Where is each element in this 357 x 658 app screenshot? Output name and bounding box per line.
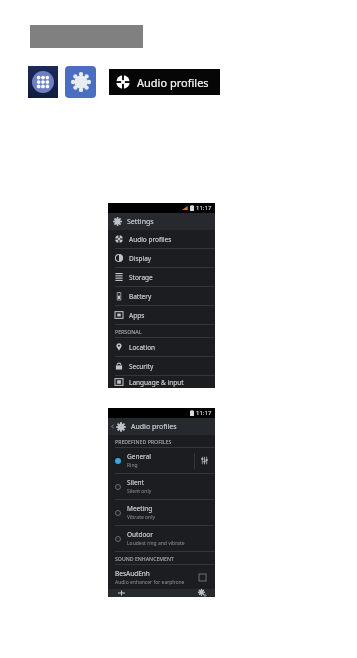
staticText: PREDEFINED PROFILES [115, 438, 172, 445]
staticText: Security [129, 362, 154, 371]
staticText: Audio profiles [129, 235, 172, 244]
staticText: Loudest ring and vibrate [127, 540, 185, 547]
button[interactable]: Language & input [108, 376, 215, 388]
staticText: 11:17 [196, 204, 212, 212]
button[interactable]: Settings [65, 66, 96, 98]
button[interactable]: Apps [28, 66, 58, 98]
staticText: General [127, 452, 151, 461]
button[interactable]: Profile settings [200, 456, 209, 465]
staticText: Apps [129, 311, 145, 320]
staticText: Settings [127, 217, 154, 227]
staticText: Location [129, 343, 156, 352]
button[interactable]: Audio profiles [108, 230, 215, 249]
staticText: Language & input [129, 378, 184, 387]
staticText: Audio profiles [131, 422, 177, 432]
button[interactable]: Audio profiles [116, 69, 209, 95]
staticText: Vibrate only [127, 514, 156, 521]
button[interactable]: Location [108, 338, 215, 357]
staticText: Ring [127, 462, 138, 469]
staticText: BesAudEnh [115, 569, 150, 578]
staticText: 11:17 [196, 409, 212, 417]
staticText: Battery [129, 292, 152, 301]
other: Back [110, 424, 115, 429]
button[interactable]: Battery [108, 287, 215, 306]
staticText: Audio profiles [137, 75, 209, 90]
button[interactable]: Settings [113, 213, 215, 230]
staticText: Outdoor [127, 530, 153, 539]
staticText: SOUND ENHANCEMENT [115, 555, 174, 562]
button[interactable]: Back [110, 418, 215, 435]
staticText: Meeting [127, 504, 153, 513]
staticText: Audio enhancer for earphone [115, 579, 185, 586]
button[interactable]: Outdoor [108, 526, 215, 552]
staticText: Silent [127, 478, 144, 487]
button[interactable]: Silent [108, 474, 215, 500]
button[interactable]: Display [108, 249, 215, 268]
staticText: Display [129, 254, 152, 263]
staticText: Storage [129, 273, 153, 282]
button[interactable]: Apps [108, 306, 215, 325]
button[interactable]: Meeting [108, 500, 215, 526]
button[interactable]: Security [108, 357, 215, 376]
button[interactable]: Storage [108, 268, 215, 287]
button[interactable]: More settings [197, 589, 207, 597]
button[interactable]: General [108, 448, 215, 474]
button[interactable]: BesAudEnh [115, 565, 206, 589]
staticText: PERSONAL [115, 328, 142, 335]
staticText: Silent only [127, 488, 152, 495]
button[interactable]: Add profile [116, 589, 127, 597]
